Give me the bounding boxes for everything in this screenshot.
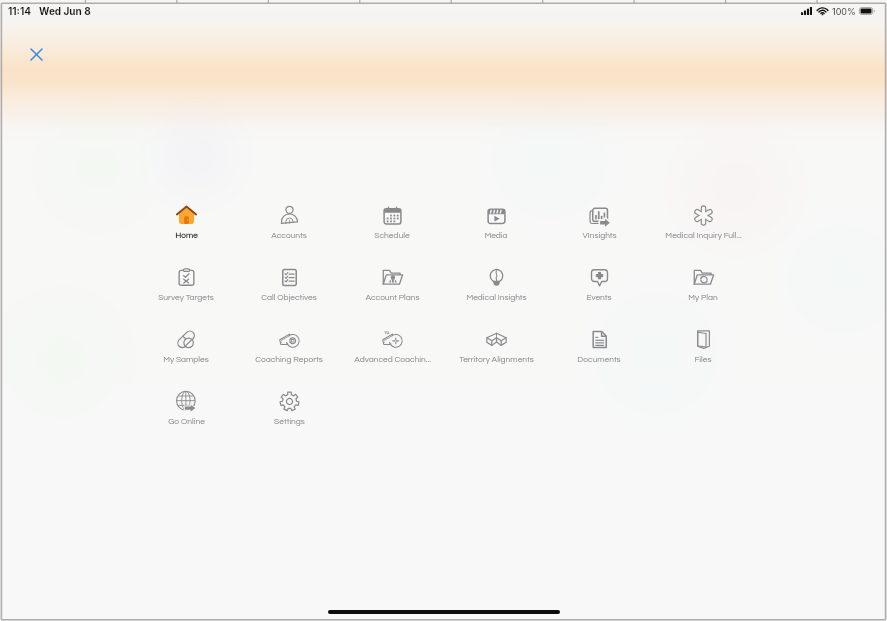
button[interactable]: Settings xyxy=(239,391,339,426)
staticText: Wed Jun 8 xyxy=(39,5,91,17)
staticText: Territory Alignments xyxy=(459,355,534,364)
button[interactable]: Coaching Reports xyxy=(239,329,339,364)
staticText: 100% xyxy=(832,6,856,17)
staticText: My Plan xyxy=(688,293,718,302)
staticText: VInsights xyxy=(582,231,617,240)
button[interactable]: Advanced Coachin... xyxy=(342,329,442,364)
button[interactable]: Medical Inquiry Full... xyxy=(653,205,753,240)
button[interactable]: My Plan xyxy=(653,267,753,302)
button[interactable]: Home xyxy=(136,205,236,240)
staticText: My Samples xyxy=(163,355,209,364)
staticText: Settings xyxy=(274,417,305,426)
button[interactable]: Go Online xyxy=(136,391,236,426)
button[interactable]: Events xyxy=(549,267,649,302)
button[interactable]: Schedule xyxy=(342,205,442,240)
staticText: Documents xyxy=(577,355,621,364)
staticText: Call Objectives xyxy=(261,293,317,302)
staticText: Survey Targets xyxy=(158,293,214,302)
button[interactable]: Survey Targets xyxy=(136,267,236,302)
button[interactable]: Documents xyxy=(549,329,649,364)
staticText: Accounts xyxy=(271,231,307,240)
staticText: Account Plans xyxy=(365,293,420,302)
button[interactable]: VInsights xyxy=(549,205,649,240)
button[interactable]: Files xyxy=(653,329,753,364)
button[interactable]: Account Plans xyxy=(342,267,442,302)
button[interactable]: Media xyxy=(446,205,546,240)
button[interactable]: Accounts xyxy=(239,205,339,240)
button[interactable]: Call Objectives xyxy=(239,267,339,302)
staticText: Events xyxy=(586,293,612,302)
button[interactable]: Close xyxy=(24,42,48,66)
button[interactable]: Medical Insights xyxy=(446,267,546,302)
staticText: Home xyxy=(175,231,198,240)
staticText: Go Online xyxy=(168,417,205,426)
staticText: Files xyxy=(694,355,712,364)
staticText: Advanced Coachin... xyxy=(354,355,431,364)
button[interactable]: My Samples xyxy=(136,329,236,364)
staticText: Medical Insights xyxy=(466,293,527,302)
staticText: Schedule xyxy=(374,231,410,240)
staticText: Coaching Reports xyxy=(255,355,323,364)
staticText: 11:14 xyxy=(8,5,32,17)
staticText: Media xyxy=(484,231,508,240)
button[interactable]: Territory Alignments xyxy=(446,329,546,364)
staticText: Medical Inquiry Full... xyxy=(665,231,742,240)
